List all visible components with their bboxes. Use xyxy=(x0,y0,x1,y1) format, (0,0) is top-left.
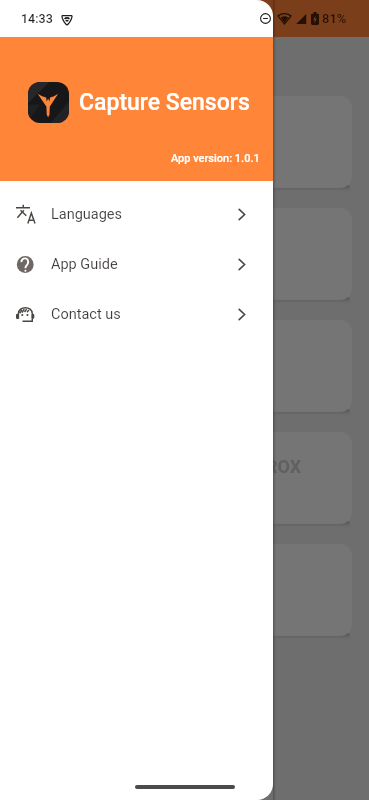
staticText: Contact us xyxy=(51,306,121,323)
button[interactable]: Contact us xyxy=(0,289,273,339)
button[interactable] xyxy=(18,96,352,188)
staticText: 14:33 xyxy=(21,11,53,26)
staticText: ROX xyxy=(266,456,302,477)
button[interactable] xyxy=(18,544,352,636)
button[interactable] xyxy=(18,208,352,300)
button[interactable] xyxy=(18,320,352,412)
button[interactable]: Languages xyxy=(0,189,273,239)
button[interactable]: App Guide xyxy=(0,239,273,289)
staticText: App version: 1.0.1 xyxy=(171,152,260,165)
staticText: App Guide xyxy=(51,256,118,273)
staticText: Languages xyxy=(51,206,123,223)
staticText: 81% xyxy=(322,11,347,26)
other: Do not disturb xyxy=(260,13,271,24)
staticText: Capture Sensors xyxy=(79,89,250,116)
button[interactable]: ROX xyxy=(18,432,352,524)
